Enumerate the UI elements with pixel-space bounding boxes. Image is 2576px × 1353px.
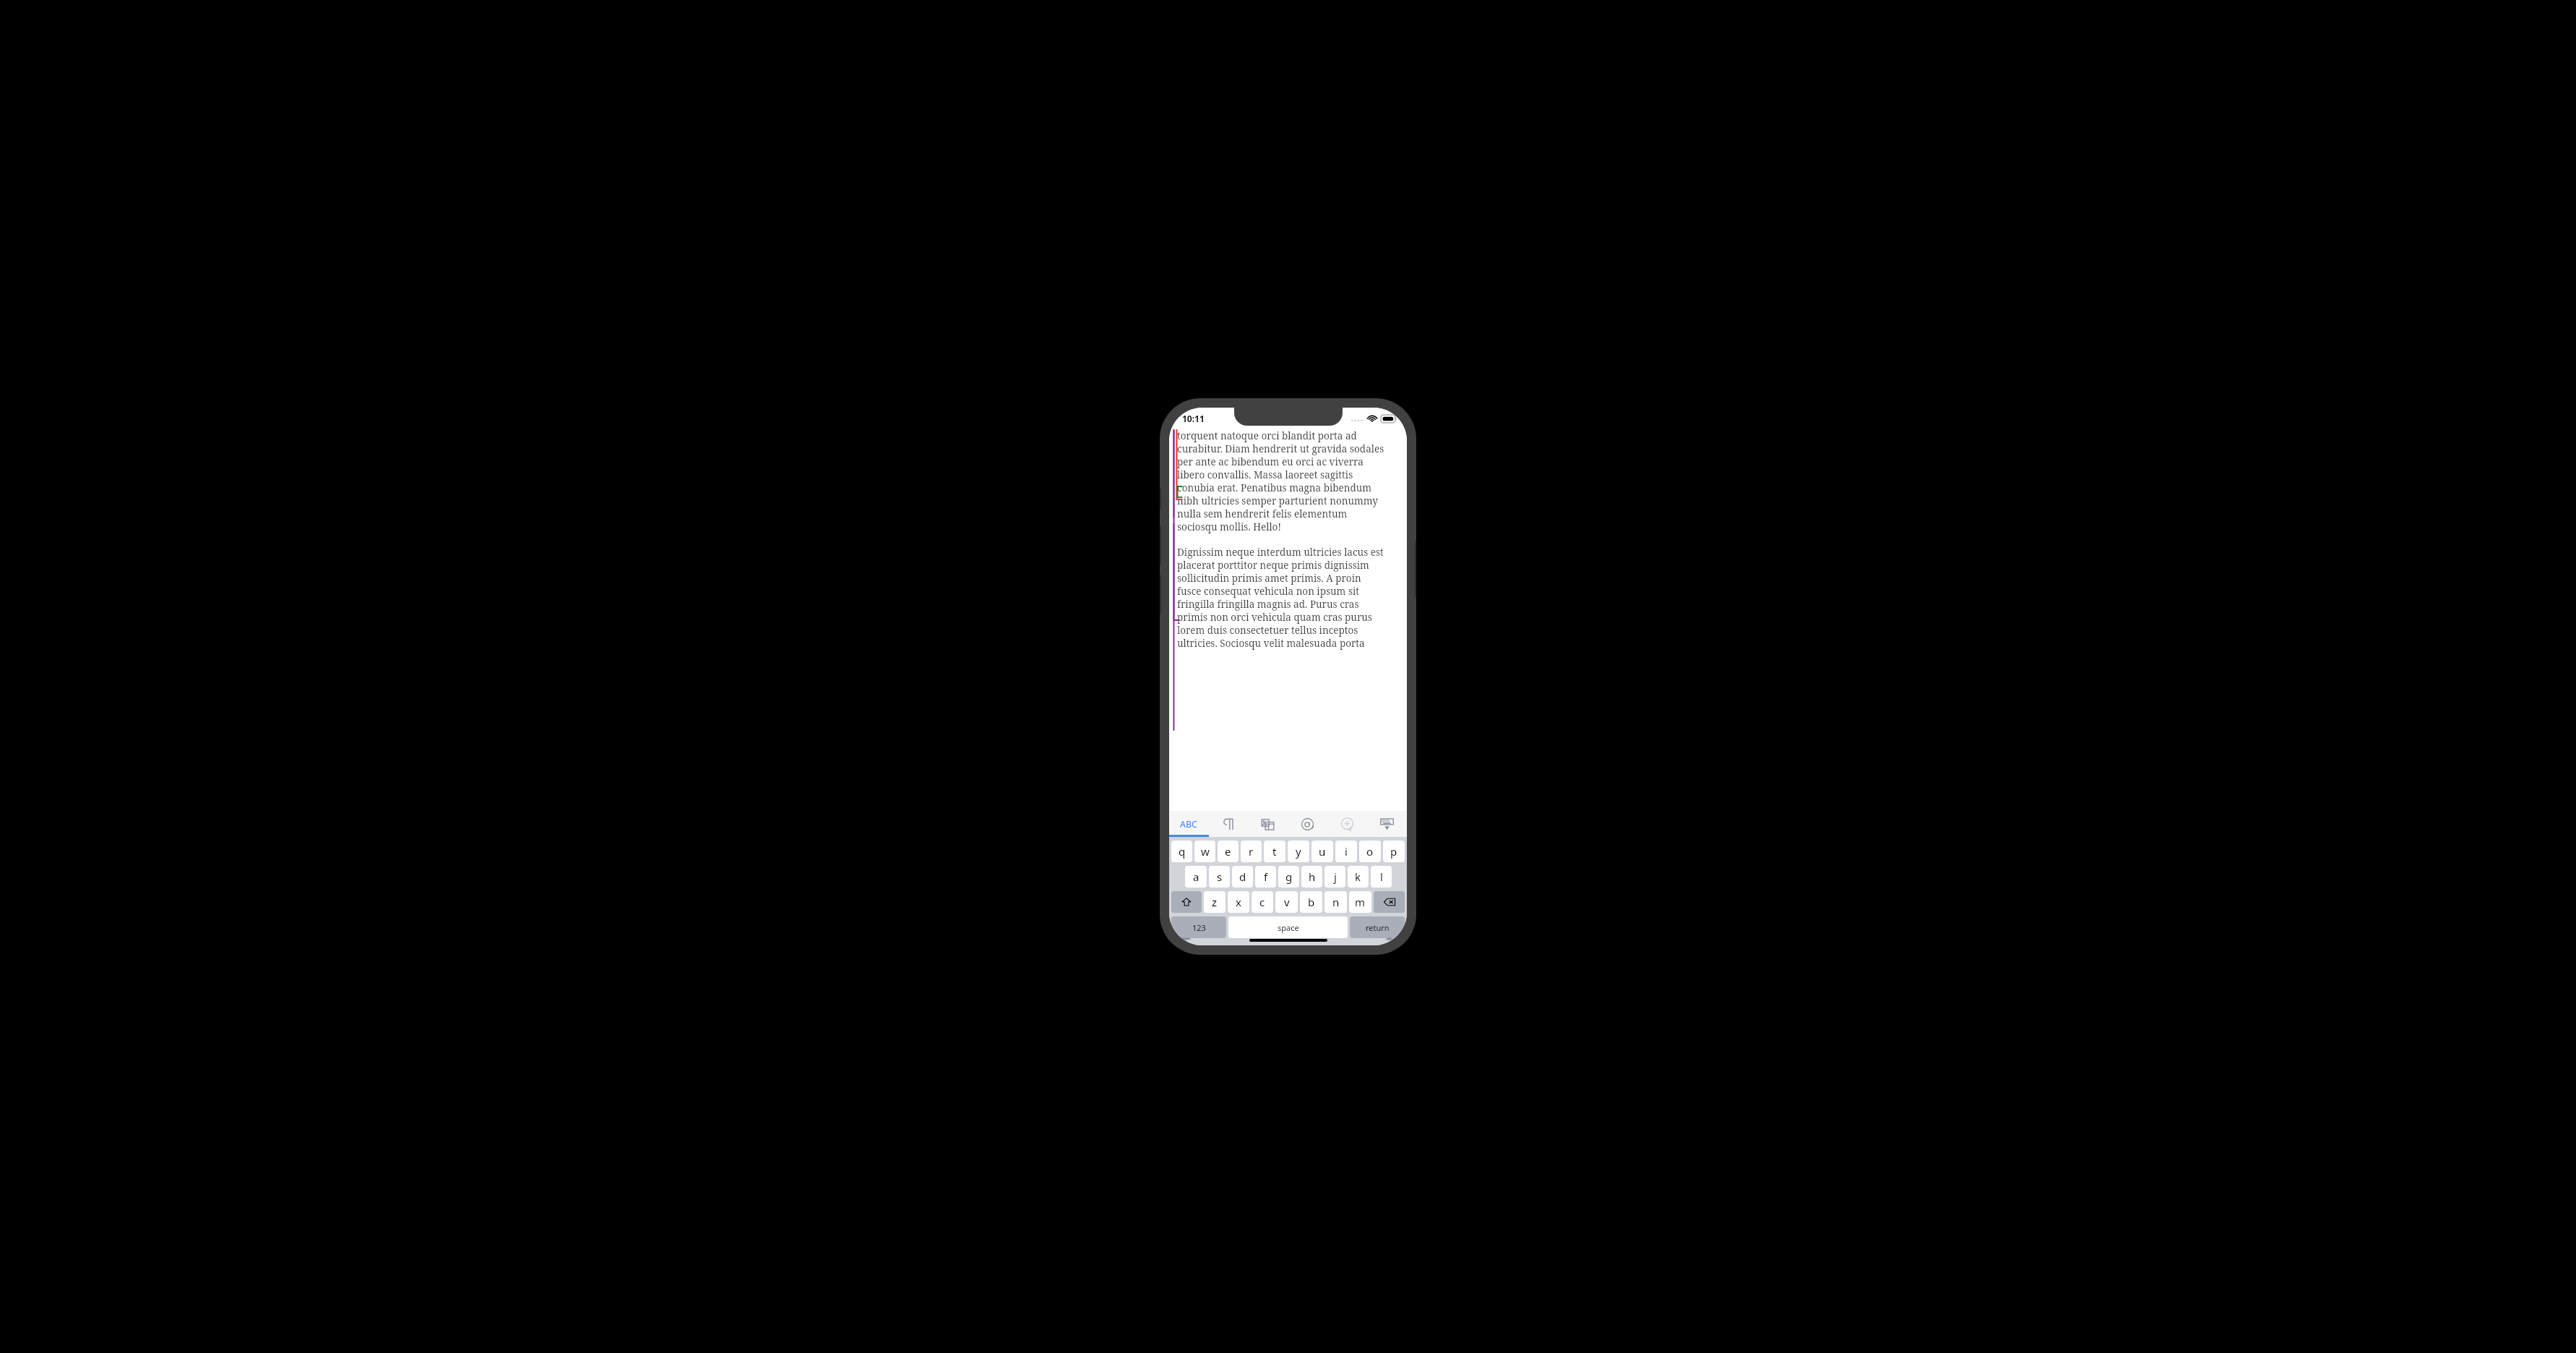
staticText: m bbox=[1355, 895, 1366, 909]
staticText: p bbox=[1390, 844, 1397, 859]
button[interactable]: return bbox=[1350, 916, 1405, 938]
button[interactable]: Hide keyboard bbox=[1367, 811, 1407, 837]
staticText: h bbox=[1309, 869, 1316, 884]
staticText: per ante ac bibendum eu orci ac viverra bbox=[1177, 455, 1364, 468]
button[interactable]: i bbox=[1335, 841, 1357, 862]
staticText: ABC bbox=[1180, 818, 1198, 830]
button[interactable]: b bbox=[1300, 891, 1322, 913]
staticText: curabitur. Diam hendrerit ut gravida sod… bbox=[1177, 442, 1384, 455]
staticText: a bbox=[1193, 869, 1199, 884]
staticText: fringilla fringilla magnis ad. Purus cra… bbox=[1177, 598, 1359, 611]
staticText: w bbox=[1201, 844, 1210, 859]
staticText: i bbox=[1345, 844, 1348, 859]
button[interactable]: v bbox=[1275, 891, 1298, 913]
staticText: primis non orci vehicula quam cras purus bbox=[1177, 611, 1372, 624]
staticText: v bbox=[1284, 895, 1290, 909]
staticText: x bbox=[1236, 895, 1241, 909]
staticText: fusce consequat vehicula non ipsum sit bbox=[1177, 585, 1360, 598]
button[interactable]: 123 bbox=[1171, 916, 1226, 938]
staticText: ultricies. Sociosqu velit malesuada port… bbox=[1177, 637, 1365, 650]
staticText: u bbox=[1319, 844, 1326, 859]
button[interactable]: w bbox=[1194, 841, 1215, 862]
button[interactable]: r bbox=[1241, 841, 1262, 862]
staticText: placerat porttitor neque primis dignissi… bbox=[1177, 559, 1369, 572]
button[interactable]: p bbox=[1383, 841, 1405, 862]
staticText: d bbox=[1239, 869, 1246, 884]
button[interactable]: u bbox=[1311, 841, 1333, 862]
button[interactable]: z bbox=[1204, 891, 1225, 913]
staticText: sollicitudin primis amet primis. A proin bbox=[1177, 572, 1361, 585]
button[interactable]: s bbox=[1209, 866, 1230, 888]
button[interactable]: h bbox=[1301, 866, 1322, 888]
button[interactable]: Backspace bbox=[1374, 891, 1405, 913]
staticText: l bbox=[1380, 869, 1383, 884]
staticText: nulla sem hendrerit felis elementum bbox=[1177, 507, 1348, 520]
button[interactable]: l bbox=[1371, 866, 1392, 888]
staticText: f bbox=[1264, 869, 1268, 884]
button[interactable]: g bbox=[1278, 866, 1299, 888]
staticText: q bbox=[1179, 844, 1186, 859]
button[interactable]: Add comment bbox=[1327, 811, 1367, 837]
staticText: sociosqu mollis. Hello! bbox=[1177, 520, 1281, 533]
staticText: t bbox=[1272, 844, 1277, 859]
staticText: conubia erat. Penatibus magna bibendum bbox=[1177, 481, 1372, 494]
staticText: s bbox=[1217, 869, 1223, 884]
staticText: c bbox=[1259, 895, 1265, 909]
staticText: torquent natoque orci blandit porta ad bbox=[1177, 429, 1357, 442]
staticText: space bbox=[1278, 922, 1299, 933]
staticText: lorem duis consectetuer tellus inceptos bbox=[1177, 624, 1358, 637]
button[interactable]: m bbox=[1349, 891, 1371, 913]
button[interactable]: n bbox=[1324, 891, 1347, 913]
button[interactable]: e bbox=[1218, 841, 1239, 862]
button[interactable]: q bbox=[1171, 841, 1192, 862]
staticText: e bbox=[1225, 844, 1231, 859]
staticText: Dignissim neque interdum ultricies lacus… bbox=[1177, 546, 1384, 559]
staticText: z bbox=[1212, 895, 1218, 909]
button[interactable]: f bbox=[1255, 866, 1276, 888]
staticText: nibh ultricies semper parturient nonummy bbox=[1177, 494, 1378, 507]
button[interactable]: y bbox=[1288, 841, 1309, 862]
staticText: b bbox=[1308, 895, 1315, 909]
button[interactable]: Insert media bbox=[1248, 811, 1288, 837]
button[interactable]: ABC bbox=[1169, 811, 1208, 837]
staticText: return bbox=[1366, 922, 1390, 933]
staticText: y bbox=[1296, 844, 1301, 859]
button[interactable]: space bbox=[1228, 916, 1348, 938]
button[interactable]: Emoji bbox=[1177, 938, 1193, 940]
button[interactable]: a bbox=[1185, 866, 1207, 888]
staticText: n bbox=[1332, 895, 1340, 909]
button[interactable]: Shift bbox=[1171, 891, 1202, 913]
button[interactable]: j bbox=[1324, 866, 1345, 888]
staticText: j bbox=[1334, 869, 1337, 884]
staticText: k bbox=[1355, 869, 1361, 884]
staticText: r bbox=[1249, 844, 1254, 859]
staticText: o bbox=[1366, 844, 1374, 859]
button[interactable]: Voice input bbox=[1382, 938, 1397, 940]
staticText: 123 bbox=[1192, 922, 1206, 933]
button[interactable]: k bbox=[1348, 866, 1369, 888]
button[interactable]: Mention bbox=[1288, 811, 1327, 837]
button[interactable]: d bbox=[1232, 866, 1253, 888]
button[interactable]: x bbox=[1228, 891, 1249, 913]
staticText: libero convallis. Massa laoreet sagittis bbox=[1177, 468, 1353, 481]
button[interactable]: c bbox=[1252, 891, 1273, 913]
button[interactable]: Paragraph bbox=[1208, 811, 1248, 837]
staticText: 10:11 bbox=[1182, 413, 1205, 424]
button[interactable]: o bbox=[1359, 841, 1381, 862]
staticText: g bbox=[1285, 869, 1293, 884]
button[interactable]: t bbox=[1264, 841, 1285, 862]
